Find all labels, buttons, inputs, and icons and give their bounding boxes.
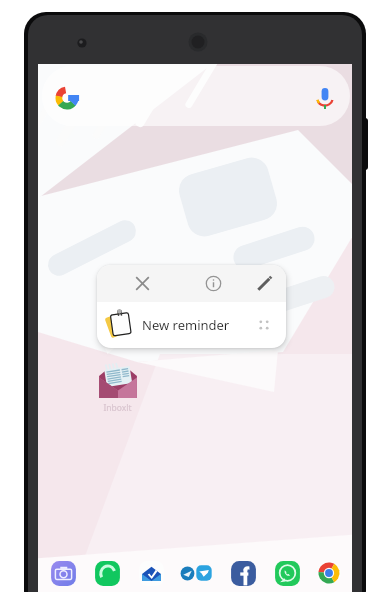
staticText: New reminder bbox=[142, 316, 230, 334]
button[interactable]: WhatsApp bbox=[274, 560, 301, 587]
button[interactable]: Info bbox=[195, 265, 232, 302]
button[interactable]: Search bbox=[42, 66, 350, 126]
button[interactable]: Twitter bbox=[180, 566, 195, 581]
button[interactable]: Phone bbox=[94, 560, 121, 587]
button[interactable]: Edit bbox=[246, 265, 283, 302]
button[interactable]: Close bbox=[124, 265, 161, 302]
button[interactable]: Drag handle bbox=[252, 313, 276, 337]
button[interactable]: Camera bbox=[50, 560, 77, 587]
button[interactable]: Inboxlt bbox=[93, 360, 142, 414]
staticText: Inboxlt bbox=[103, 402, 132, 414]
button[interactable]: Mail bbox=[138, 560, 165, 587]
button[interactable]: Twitter Lite bbox=[196, 565, 212, 581]
button[interactable]: Facebook bbox=[230, 560, 257, 587]
button[interactable]: Chrome bbox=[317, 561, 341, 585]
button[interactable]: New reminder bbox=[97, 302, 286, 348]
